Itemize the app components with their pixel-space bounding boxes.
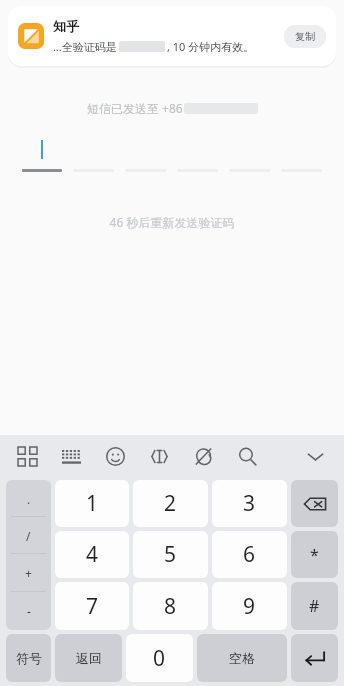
staticText: 3 (243, 489, 256, 518)
staticText: 6 (243, 540, 256, 569)
button[interactable]: * (291, 531, 338, 578)
staticText: 复制 (295, 30, 315, 43)
staticText: + (25, 565, 32, 581)
button[interactable]: 5 (133, 531, 208, 578)
staticText: 知乎 (53, 18, 79, 34)
staticText: 9 (243, 592, 256, 621)
staticText: 0 (153, 644, 166, 673)
staticText: . (27, 491, 31, 507)
button[interactable]: / (6, 517, 51, 554)
button[interactable] (281, 138, 322, 172)
button[interactable]: 0 (126, 634, 193, 682)
button[interactable]: Apps (10, 439, 44, 473)
button[interactable]: 符号 (6, 634, 51, 682)
button[interactable]: # (291, 582, 338, 630)
button[interactable]: Keyboard (54, 439, 88, 473)
button[interactable]: Enter (291, 634, 338, 682)
staticText: 8 (164, 592, 177, 621)
staticText: 符号 (16, 650, 42, 666)
staticText: * (310, 544, 319, 566)
button[interactable]: . (6, 480, 51, 517)
button[interactable] (22, 138, 62, 172)
button[interactable]: Text cursor (142, 439, 176, 473)
button[interactable]: 返回 (55, 634, 122, 682)
button[interactable]: - (6, 592, 51, 630)
staticText: 返回 (76, 650, 102, 666)
button[interactable]: 9 (212, 582, 287, 630)
button[interactable]: Search (230, 439, 264, 473)
staticText: 空格 (229, 650, 255, 666)
staticText: / (26, 528, 31, 544)
staticText: - (27, 603, 31, 619)
button[interactable]: 3 (212, 480, 287, 527)
button[interactable]: + (6, 554, 51, 592)
button[interactable]: 7 (55, 582, 129, 630)
staticText: …全验证码是 (53, 39, 117, 54)
button[interactable]: 知乎 (8, 6, 336, 66)
button[interactable] (125, 138, 166, 172)
staticText: # (309, 595, 320, 617)
button[interactable]: Hide keyboard (298, 439, 332, 473)
button[interactable]: 空格 (197, 634, 287, 682)
button[interactable] (73, 138, 114, 172)
staticText: 46 秒后重新发送验证码 (0, 214, 344, 230)
button[interactable] (229, 138, 270, 172)
button[interactable]: 2 (133, 480, 208, 527)
staticText: 2 (164, 489, 177, 518)
button[interactable]: 6 (212, 531, 287, 578)
staticText: 短信已发送至 +86 (87, 100, 183, 116)
staticText: 5 (164, 540, 177, 569)
button[interactable]: Clipboard (186, 439, 220, 473)
button[interactable]: 8 (133, 582, 208, 630)
button[interactable]: 4 (55, 531, 129, 578)
staticText: , 10 分钟内有效。 (167, 39, 255, 54)
button[interactable]: Delete (291, 480, 338, 527)
button[interactable] (177, 138, 218, 172)
button[interactable]: 复制 (284, 25, 326, 48)
staticText: 1 (86, 489, 99, 518)
staticText: 7 (86, 592, 99, 621)
staticText: 4 (86, 540, 99, 569)
button[interactable]: 1 (55, 480, 129, 527)
button[interactable]: Emoji (98, 439, 132, 473)
